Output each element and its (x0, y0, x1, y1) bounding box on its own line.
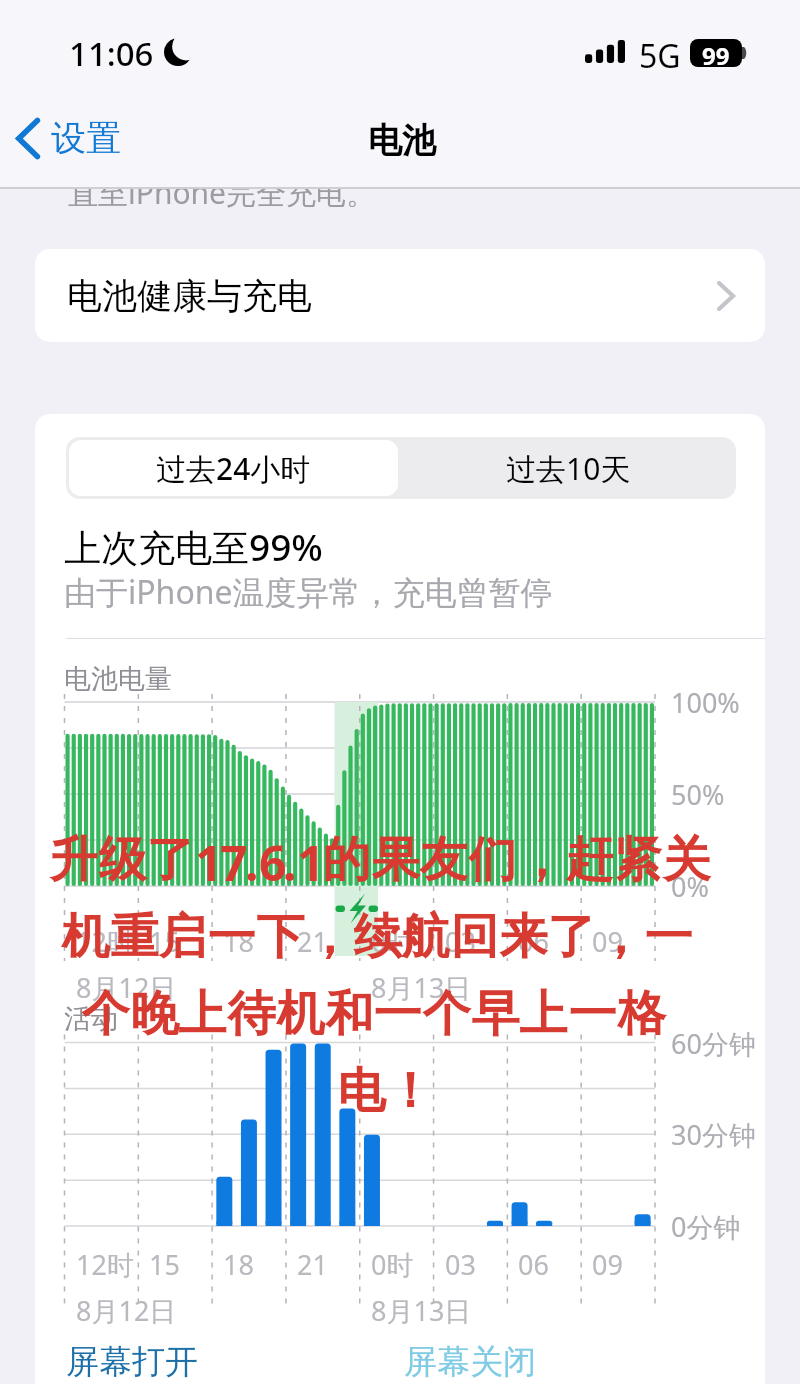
staticText: 0分钟 (671, 1208, 741, 1245)
staticText: 8月12日 (76, 969, 177, 1006)
staticText: 15 (149, 923, 180, 960)
staticText: 上 (178, 984, 227, 1044)
button[interactable]: 屏幕打开 (66, 1341, 198, 1383)
button[interactable]: 屏幕关闭 (404, 1341, 536, 1383)
staticText: 8月13日 (371, 969, 472, 1006)
staticText: 06 (518, 923, 549, 960)
staticText: 99 (702, 39, 730, 67)
staticText: 过去10天 (506, 448, 631, 489)
staticText: 一 (207, 907, 256, 967)
staticText: 机 (276, 984, 325, 1044)
staticText: 果 (371, 830, 420, 890)
staticText: 机 (61, 907, 110, 967)
staticText: 的 (322, 830, 371, 890)
staticText: 们 (468, 830, 517, 890)
staticText: 6 (259, 830, 284, 895)
staticText: 电池 (368, 119, 436, 162)
staticText: 设置 (51, 116, 121, 160)
staticText: 下 (256, 907, 305, 967)
staticText: 由于iPhone温度异常，充电曾暂停 (64, 570, 553, 614)
staticText: 15 (149, 1246, 180, 1283)
staticText: 1 (195, 830, 220, 895)
staticText: 待 (227, 984, 276, 1044)
staticText: 60分钟 (671, 1025, 756, 1062)
staticText: 一 (373, 984, 422, 1044)
staticText: 7 (220, 830, 245, 895)
staticText: 100% (671, 684, 740, 721)
staticText: 0时 (371, 923, 414, 960)
staticText: 09 (592, 923, 623, 960)
staticText: 电池健康与充电 (67, 274, 312, 318)
staticText: 12时 (76, 1246, 134, 1283)
staticText: 50% (671, 776, 725, 813)
staticText: . (245, 830, 258, 895)
staticText: ， (305, 907, 353, 967)
staticText: 级 (98, 830, 147, 890)
staticText: 过去24小时 (156, 448, 311, 489)
staticText: 30分钟 (671, 1116, 756, 1153)
staticText: 启 (158, 907, 207, 967)
staticText: 和 (325, 984, 374, 1044)
staticText: ！ (386, 1061, 416, 1121)
staticText: 电 (337, 1061, 386, 1121)
staticText: ， (596, 907, 644, 967)
staticText: ， (517, 830, 565, 890)
staticText: 0时 (371, 1246, 414, 1283)
staticText: 09 (592, 1246, 623, 1283)
staticText: 03 (445, 923, 476, 960)
staticText: 18 (223, 1246, 254, 1283)
staticText: 21 (297, 923, 328, 960)
staticText: 一 (568, 984, 617, 1044)
staticText: 屏幕打开 (66, 1341, 198, 1383)
staticText: 早 (471, 984, 520, 1044)
button[interactable]: 设置 (16, 116, 121, 160)
staticText: 上 (519, 984, 568, 1044)
staticText: 03 (445, 1246, 476, 1283)
staticText: 21 (297, 1246, 328, 1283)
staticText: 了 (146, 830, 195, 890)
staticText: 06 (518, 1246, 549, 1283)
staticText: 11:06 (69, 31, 154, 76)
staticText: 直至iPhone完全充电。 (68, 172, 377, 213)
staticText: 屏幕关闭 (404, 1341, 536, 1383)
staticText: 重 (110, 907, 159, 967)
staticText: 8月12日 (76, 1292, 177, 1329)
staticText: 1 (297, 830, 322, 895)
staticText: 了 (547, 907, 596, 967)
staticText: 12时 (76, 923, 134, 960)
staticText: 活动 (64, 1002, 118, 1036)
staticText: 关 (662, 830, 711, 890)
staticText: 个 (81, 984, 130, 1044)
staticText: 回 (450, 907, 499, 967)
staticText: 晚 (130, 984, 179, 1044)
staticText: 上次充电至99% (64, 521, 323, 572)
staticText: 航 (401, 907, 450, 967)
staticText: 来 (499, 907, 548, 967)
staticText: 赶 (565, 830, 614, 890)
staticText: 个 (422, 984, 471, 1044)
staticText: 格 (617, 984, 666, 1044)
staticText: 友 (419, 830, 468, 890)
staticText: 电池电量 (64, 662, 172, 696)
staticText: . (283, 830, 296, 895)
button[interactable]: 过去10天 (401, 437, 736, 499)
staticText: 续 (353, 907, 402, 967)
button[interactable]: 电池健康与充电 (35, 249, 765, 342)
staticText: 5G (639, 34, 681, 78)
staticText: 紧 (613, 830, 662, 890)
staticText: 18 (223, 923, 254, 960)
staticText: 8月13日 (371, 1292, 472, 1329)
staticText: 升 (49, 830, 98, 890)
staticText: 0% (671, 868, 709, 905)
button[interactable]: 过去24小时 (69, 440, 398, 496)
staticText: 一 (644, 907, 693, 967)
